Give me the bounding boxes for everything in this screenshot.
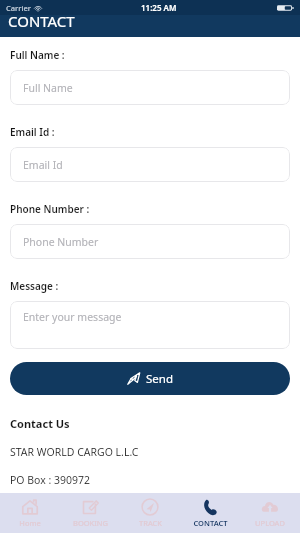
staticText: Home: [19, 518, 41, 528]
button[interactable]: Email Id: [10, 147, 290, 182]
staticText: CONTACT: [8, 11, 75, 31]
staticText: Full Name :: [10, 48, 65, 62]
button[interactable]: Phone Number: [10, 224, 290, 259]
staticText: Contact Us: [10, 416, 70, 431]
button[interactable]: Full Name: [10, 70, 290, 105]
staticText: Phone Number: [23, 235, 99, 249]
staticText: BOOKING: [73, 518, 108, 528]
button[interactable]: TRACK: [120, 493, 180, 533]
button[interactable]: CONTACT: [180, 493, 240, 533]
staticText: Send: [146, 371, 173, 387]
staticText: 11:25 AM: [141, 2, 177, 13]
button[interactable]: Send: [10, 362, 290, 395]
staticText: PO Box : 390972: [10, 473, 91, 487]
staticText: Enter your message: [23, 310, 122, 324]
staticText: STAR WORLD CARGO L.L.C: [10, 445, 139, 459]
staticText: CONTACT: [193, 518, 228, 528]
button[interactable]: BOOKING: [60, 493, 120, 533]
staticText: Email Id: [23, 158, 63, 172]
staticText: Email Id :: [10, 125, 55, 139]
staticText: Phone Number :: [10, 202, 90, 216]
staticText: Message :: [10, 279, 59, 293]
staticText: Carrier: [6, 3, 31, 13]
button[interactable]: UPLOAD: [240, 493, 300, 533]
button[interactable]: Enter your message: [10, 301, 290, 349]
staticText: UPLOAD: [255, 518, 285, 528]
button[interactable]: Home: [0, 493, 60, 533]
staticText: TRACK: [139, 518, 162, 528]
staticText: Full Name: [23, 81, 73, 95]
